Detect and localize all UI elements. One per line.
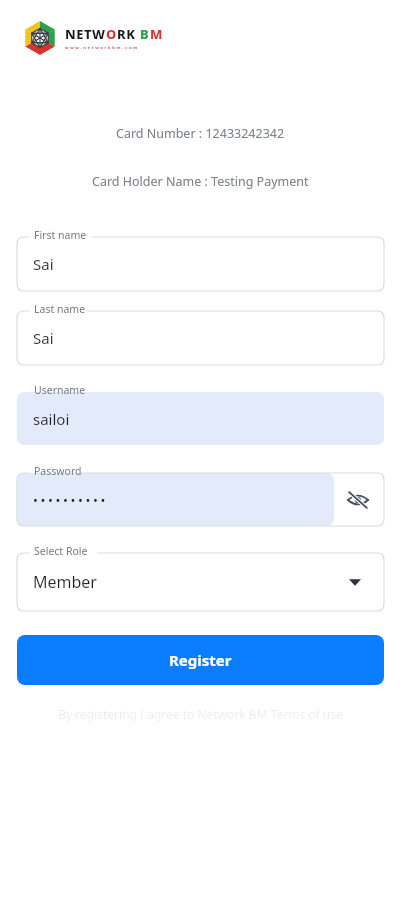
- staticText: O: [106, 25, 117, 43]
- staticText: ••••••••••: [33, 491, 108, 509]
- button[interactable]: First name: [17, 228, 384, 291]
- button[interactable]: Hide password: [331, 473, 384, 526]
- staticText: Card Number : 12433242342: [116, 125, 285, 142]
- staticText: Register: [169, 650, 232, 670]
- staticText: Username: [34, 383, 86, 397]
- staticText: NETW: [65, 25, 106, 43]
- staticText: Sai: [33, 328, 54, 348]
- staticText: Select Role: [34, 544, 88, 558]
- button[interactable]: Select Role: [17, 544, 384, 611]
- staticText: www.networkbm.com: [65, 45, 139, 51]
- staticText: M: [150, 25, 163, 43]
- staticText: By registering I agree to Network BM Ter…: [17, 706, 384, 722]
- staticText: Member: [33, 571, 97, 593]
- staticText: sailoi: [33, 409, 70, 429]
- staticText: Last name: [34, 302, 86, 316]
- staticText: RK: [117, 25, 136, 43]
- staticText: Card Holder Name : Testing Payment: [92, 173, 309, 190]
- button[interactable]: Last name: [17, 302, 384, 365]
- staticText: B: [140, 25, 150, 43]
- staticText: Password: [34, 464, 82, 478]
- button[interactable]: Register: [17, 635, 384, 685]
- button[interactable]: Select Role: [326, 553, 384, 611]
- staticText: Sai: [33, 254, 54, 274]
- button[interactable]: Username: [17, 383, 384, 445]
- staticText: First name: [34, 228, 87, 242]
- button[interactable]: Password: [17, 464, 384, 526]
